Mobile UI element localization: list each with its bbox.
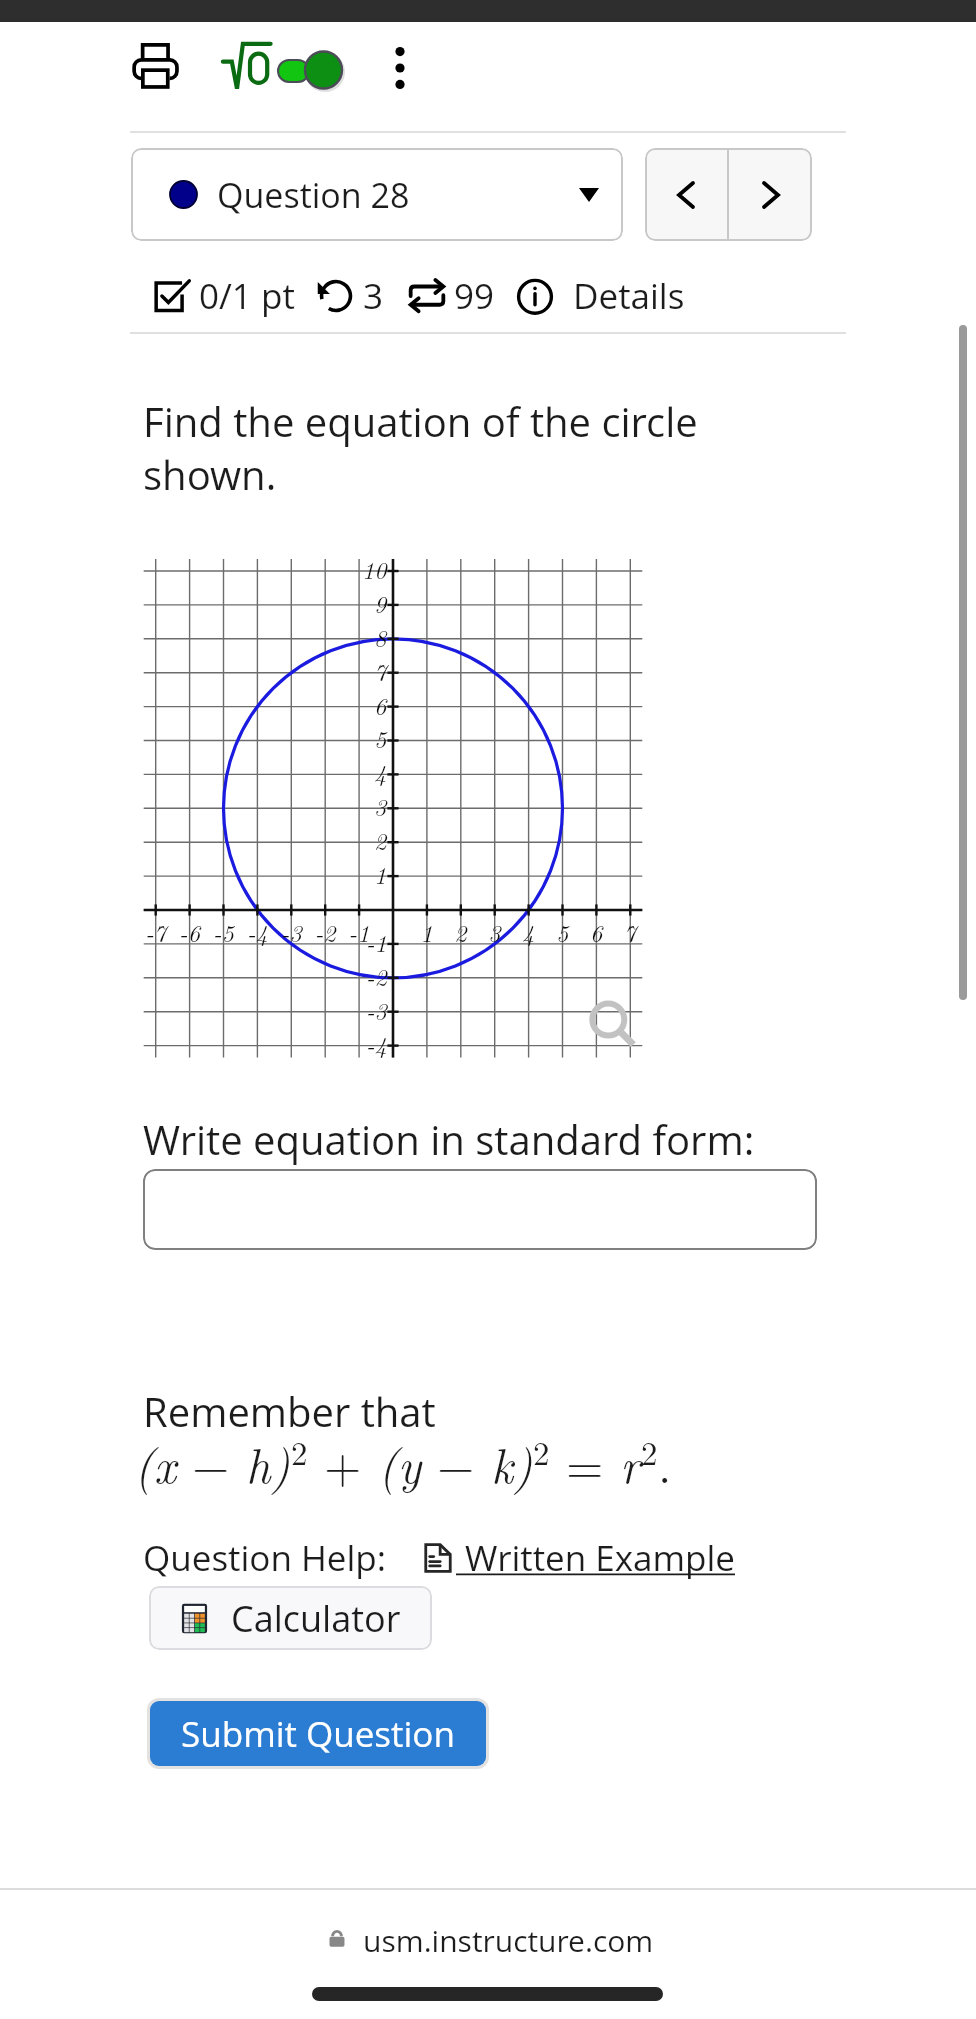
button[interactable]	[143, 1169, 817, 1250]
staticText: 3	[363, 272, 384, 320]
button[interactable]: Submit Question	[147, 1698, 489, 1769]
staticText: −	[176, 1429, 246, 1497]
button[interactable]: Toggle equation editor	[214, 30, 340, 106]
button[interactable]: Calculator	[149, 1586, 432, 1650]
staticText: Submit Question	[181, 1710, 455, 1758]
staticText: Written Example	[456, 1534, 735, 1582]
staticText: Question Help:	[143, 1534, 387, 1582]
staticText: +	[308, 1429, 378, 1497]
staticText: .	[658, 1429, 672, 1497]
staticText: Find the equation of the circle shown.	[143, 394, 763, 501]
button[interactable]: Written Example	[420, 1534, 735, 1582]
button[interactable]: Next question	[729, 148, 812, 241]
staticText: −	[421, 1429, 491, 1497]
button[interactable]: Details	[515, 272, 685, 320]
button[interactable]: Previous question	[645, 148, 727, 241]
button[interactable]: More options	[374, 32, 426, 104]
staticText: Write equation in standard form:	[143, 1112, 755, 1166]
staticText: 0/1 pt	[199, 272, 295, 320]
staticText: r	[620, 1429, 641, 1497]
staticText: 2	[291, 1428, 308, 1475]
staticText: h)	[246, 1429, 291, 1497]
button[interactable]: Print	[122, 32, 190, 102]
staticText: 2	[641, 1428, 658, 1475]
button[interactable]: Question 28	[131, 148, 623, 241]
staticText: (y	[378, 1429, 421, 1497]
staticText: Calculator	[231, 1594, 401, 1643]
staticText: =	[550, 1429, 620, 1497]
staticText: k)	[491, 1429, 533, 1497]
staticText: Remember that	[143, 1384, 436, 1438]
staticText: 2	[533, 1428, 550, 1475]
staticText: usm.instructure.com	[363, 1920, 654, 1960]
staticText: Question 28	[217, 172, 410, 218]
staticText: 99	[454, 272, 495, 320]
staticText: Details	[573, 272, 685, 320]
staticText: (x	[134, 1429, 176, 1497]
